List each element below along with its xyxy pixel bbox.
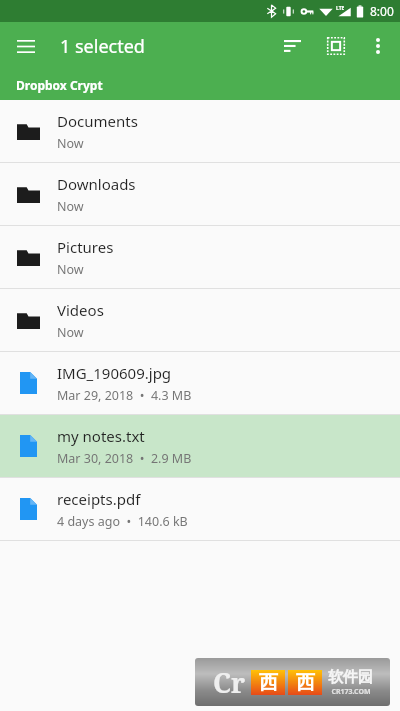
staticText: 西 xyxy=(259,671,278,695)
button[interactable]: Downloads xyxy=(0,163,400,225)
staticText: LTE xyxy=(336,5,345,12)
staticText: Now xyxy=(57,261,84,278)
staticText: Mar 29, 2018 • 4.3 MB xyxy=(57,387,192,404)
staticText: my notes.txt xyxy=(57,426,145,446)
staticText: Videos xyxy=(57,300,104,320)
staticText: Dropbox Crypt xyxy=(16,77,103,93)
button[interactable]: my notes.txt xyxy=(0,415,400,477)
staticText: 8:00 xyxy=(370,3,394,19)
staticText: receipts.pdf xyxy=(57,489,141,509)
staticText: Pictures xyxy=(57,237,114,257)
staticText: Cr xyxy=(213,664,246,701)
staticText: 西 xyxy=(296,671,315,695)
button[interactable]: More options xyxy=(358,26,398,66)
button[interactable]: Select all xyxy=(314,24,358,68)
staticText: Downloads xyxy=(57,174,136,194)
staticText: IMG_190609.jpg xyxy=(57,363,172,383)
staticText: CR173.COM xyxy=(331,687,371,697)
staticText: Now xyxy=(57,324,84,341)
button[interactable]: Dropbox Crypt xyxy=(0,70,400,100)
button[interactable]: Pictures xyxy=(0,226,400,288)
button[interactable]: Sort xyxy=(270,24,314,68)
button[interactable]: receipts.pdf xyxy=(0,478,400,540)
button[interactable]: Navigation menu xyxy=(6,26,46,66)
staticText: Now xyxy=(57,198,84,215)
button[interactable]: Documents xyxy=(0,100,400,162)
staticText: Now xyxy=(57,135,84,152)
staticText: Documents xyxy=(57,111,138,131)
button[interactable]: IMG_190609.jpg xyxy=(0,352,400,414)
staticText: Mar 30, 2018 • 2.9 MB xyxy=(57,450,192,467)
staticText: 软件园 xyxy=(328,668,373,687)
staticText: 4 days ago • 140.6 kB xyxy=(57,513,188,530)
staticText: 1 selected xyxy=(60,34,145,59)
button[interactable]: Videos xyxy=(0,289,400,351)
